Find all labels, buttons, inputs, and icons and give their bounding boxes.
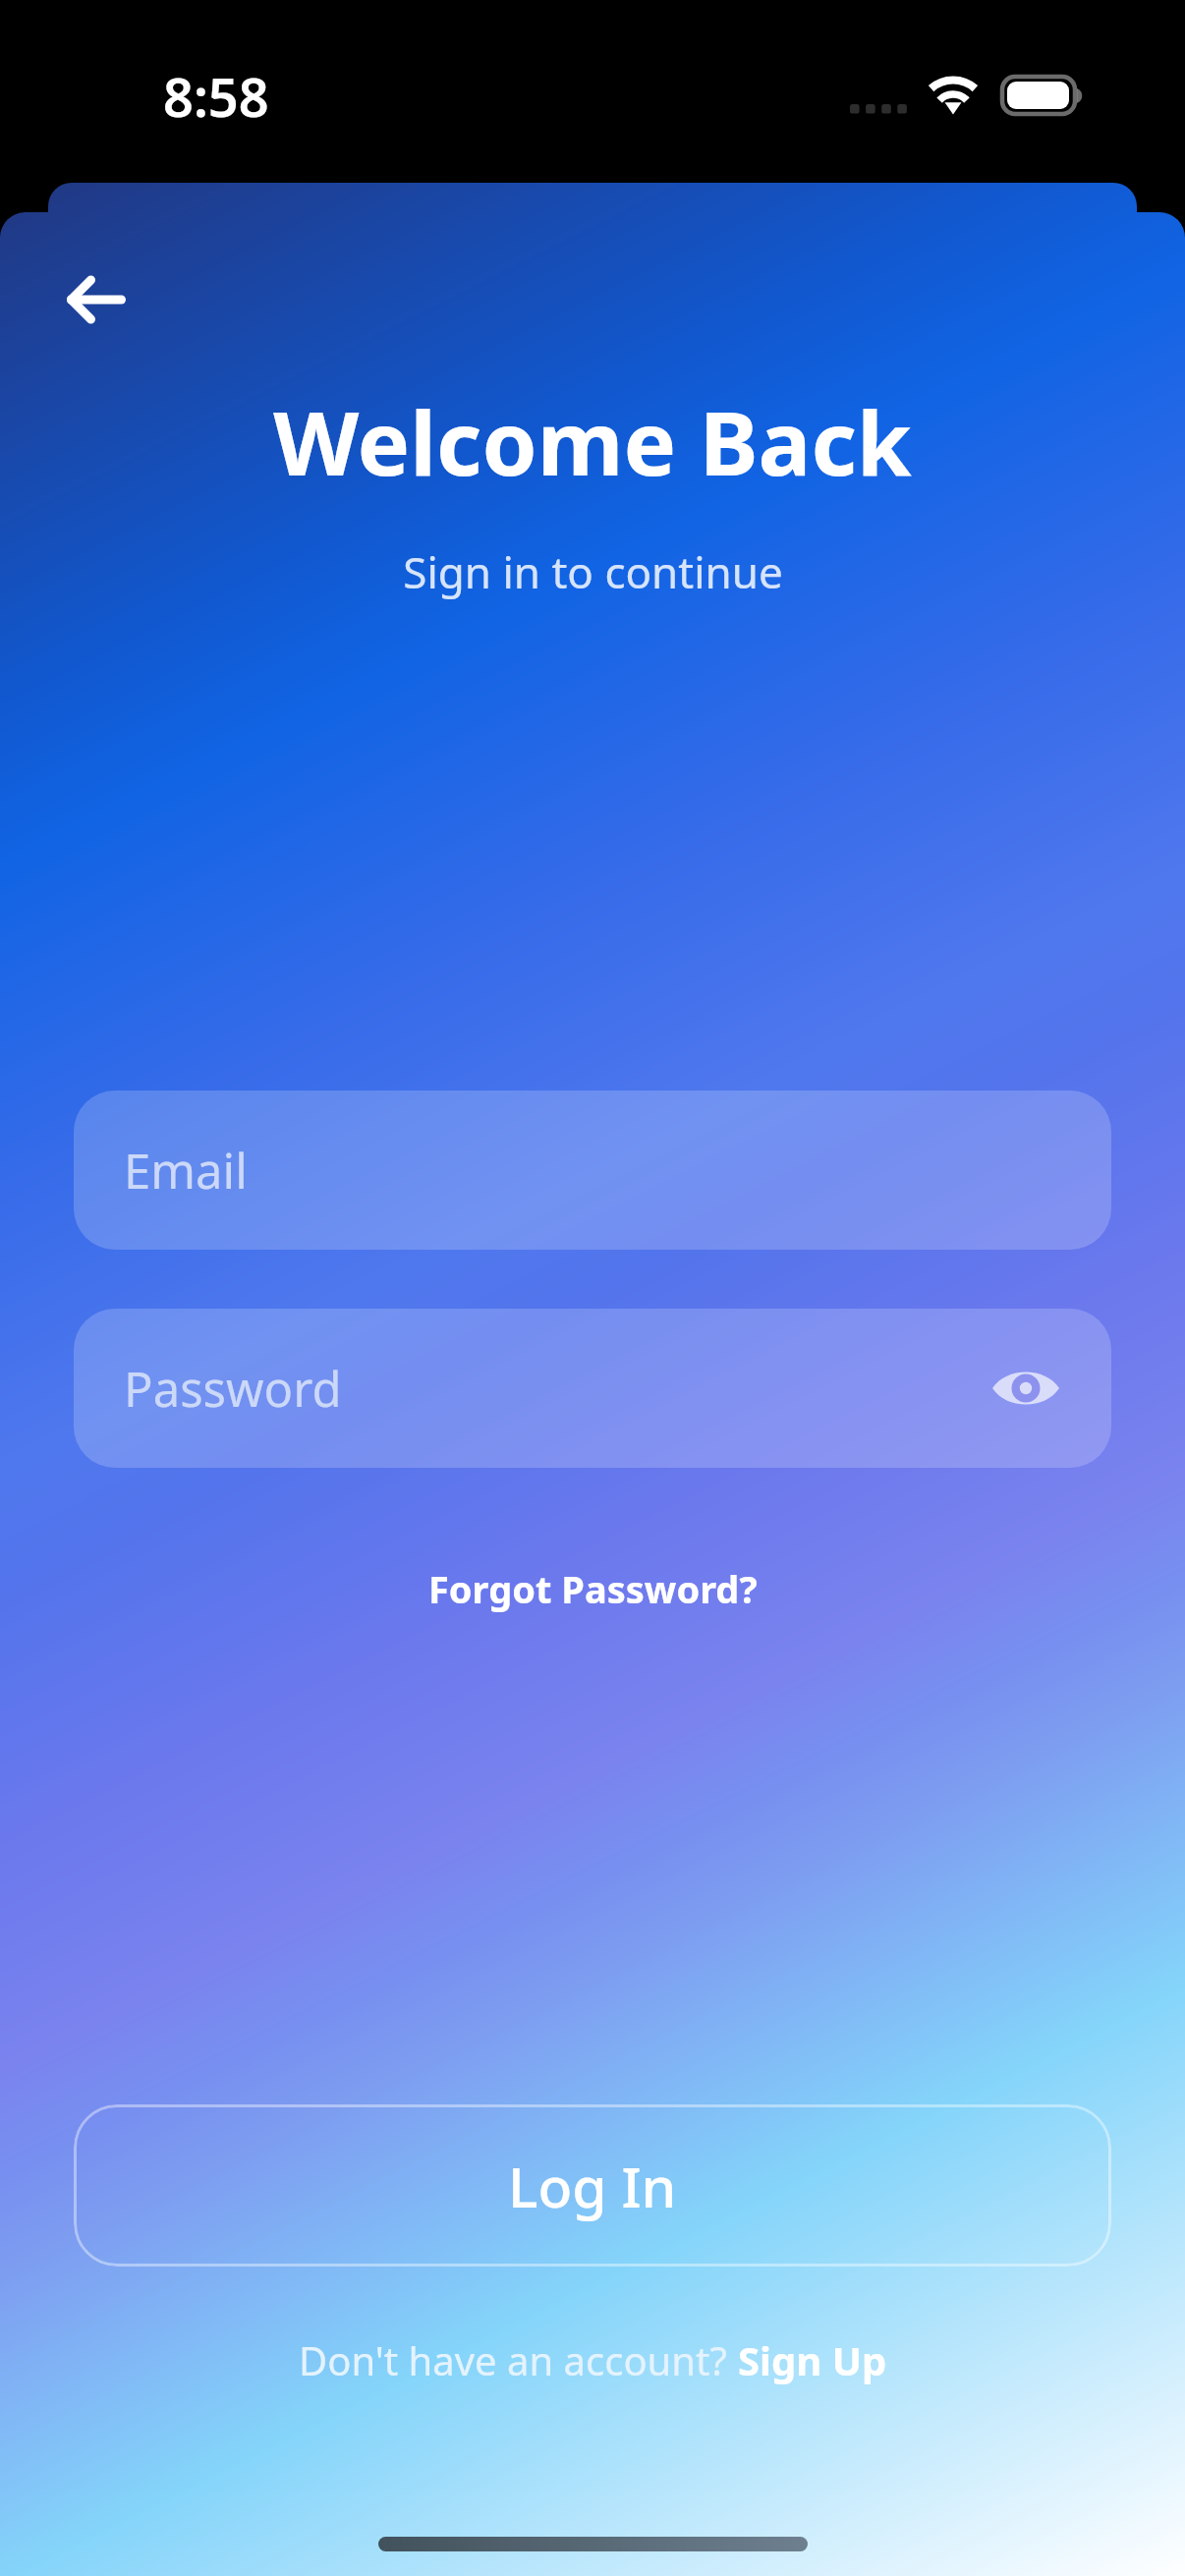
staticText: Sign Up bbox=[738, 2333, 887, 2386]
button[interactable]: Password bbox=[74, 1309, 1111, 1468]
staticText: Welcome Back bbox=[273, 381, 912, 502]
button[interactable]: Back bbox=[37, 251, 155, 368]
staticText: Password bbox=[124, 1356, 342, 1422]
button[interactable]: Log In bbox=[74, 2104, 1111, 2267]
button[interactable]: Show password bbox=[977, 1344, 1075, 1432]
staticText: Log In bbox=[508, 2148, 677, 2224]
staticText: Sign in to continue bbox=[403, 542, 783, 601]
staticText: Forgot Password? bbox=[428, 1563, 758, 1614]
button[interactable]: Email bbox=[74, 1091, 1111, 1250]
button[interactable]: Forgot Password? bbox=[409, 1551, 777, 1626]
button[interactable]: Sign Up bbox=[738, 2324, 887, 2396]
staticText: Don't have an account? bbox=[299, 2333, 738, 2386]
staticText: Email bbox=[124, 1138, 248, 1204]
staticText: 8:58 bbox=[163, 60, 269, 133]
